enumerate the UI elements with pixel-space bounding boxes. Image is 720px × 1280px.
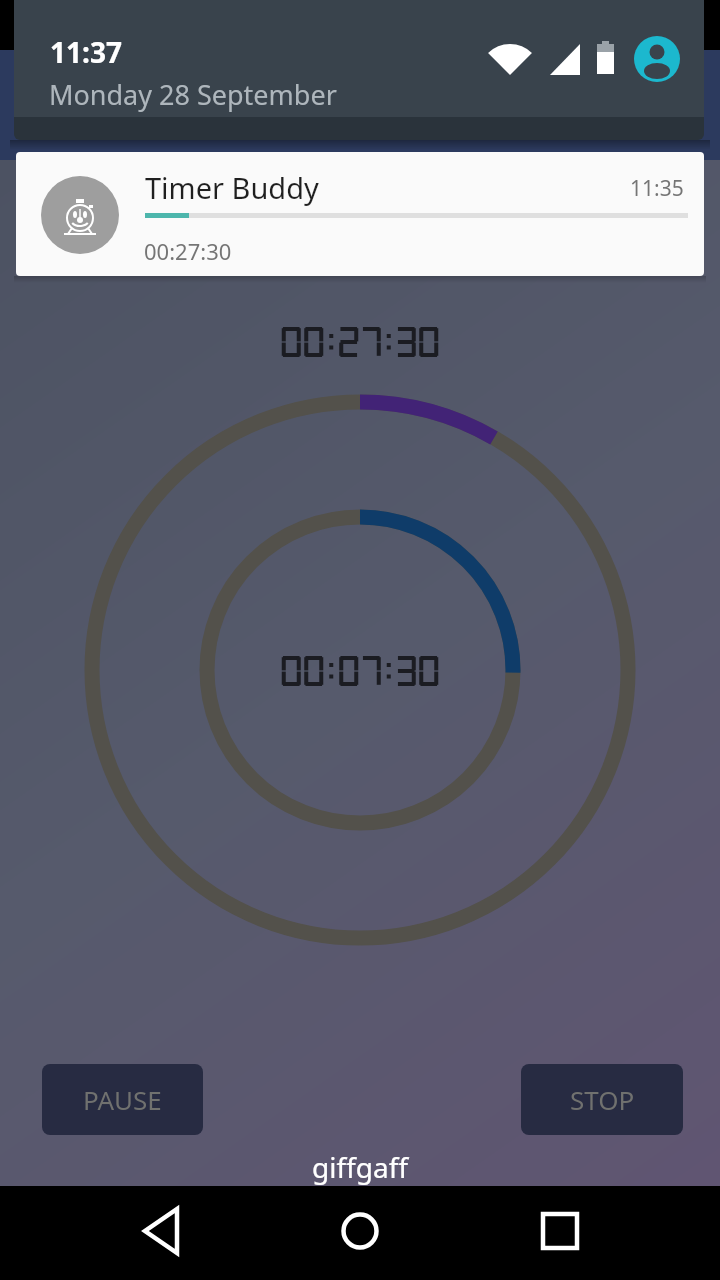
staticText: Timer Buddy — [145, 168, 319, 207]
staticText: 00:27:30 — [144, 236, 232, 266]
button[interactable]: Timer Buddy — [16, 152, 704, 276]
staticText: STOP — [570, 1082, 635, 1117]
staticText: Monday 28 September — [49, 76, 337, 113]
staticText: PAUSE — [83, 1082, 162, 1117]
button[interactable] — [0, 1186, 240, 1280]
staticText: 11:37 — [50, 33, 122, 71]
button[interactable]: STOP — [521, 1064, 683, 1135]
button[interactable] — [634, 36, 680, 82]
staticText: 11:35 — [630, 174, 684, 203]
button[interactable] — [240, 1186, 480, 1280]
staticText: giffgaff — [312, 1148, 408, 1186]
button[interactable]: PAUSE — [42, 1064, 203, 1135]
button[interactable] — [480, 1186, 720, 1280]
